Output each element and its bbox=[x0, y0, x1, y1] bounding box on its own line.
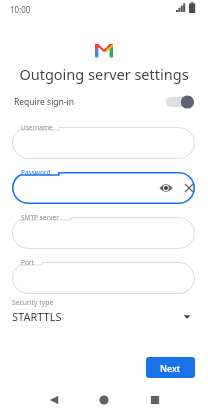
staticText: Security type bbox=[12, 298, 54, 307]
button[interactable]: Home bbox=[95, 391, 113, 409]
staticText: Username bbox=[21, 123, 53, 132]
staticText: Require sign-in bbox=[14, 96, 75, 108]
button[interactable]: Require sign-in toggle bbox=[166, 94, 194, 110]
staticText: Outgoing server settings bbox=[19, 64, 189, 84]
button[interactable]: Port bbox=[12, 262, 195, 294]
staticText: Next bbox=[160, 362, 181, 374]
button[interactable]: SMTP server bbox=[12, 217, 195, 249]
staticText: SMTP server bbox=[21, 213, 59, 222]
button[interactable]: Clear password bbox=[181, 180, 197, 196]
staticText: Port bbox=[21, 258, 34, 267]
button[interactable]: Next bbox=[146, 357, 195, 378]
button[interactable]: Back bbox=[45, 391, 63, 409]
button[interactable]: Require sign-in bbox=[0, 92, 208, 112]
staticText: Password bbox=[21, 168, 51, 177]
button[interactable]: Username bbox=[12, 127, 195, 159]
button[interactable]: Show password bbox=[158, 180, 174, 196]
button[interactable]: Security type bbox=[0, 298, 208, 330]
button[interactable]: Password bbox=[12, 172, 195, 204]
staticText: STARTTLS bbox=[12, 309, 62, 324]
staticText: 10:00 bbox=[10, 4, 31, 15]
button[interactable]: Recent apps bbox=[146, 391, 164, 409]
